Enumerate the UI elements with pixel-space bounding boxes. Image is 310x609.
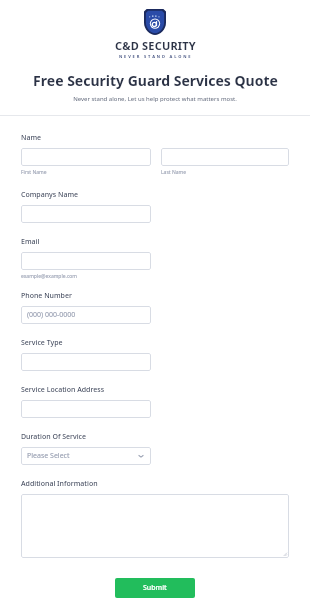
staticText: Email [21, 237, 40, 247]
button[interactable] [21, 494, 289, 558]
staticText: Duration Of Service [21, 432, 87, 442]
staticText: Never stand alone, Let us help protect w… [73, 95, 237, 103]
button[interactable]: (000) 000-0000 [21, 306, 151, 324]
staticText: C&D SECURITY [115, 38, 196, 53]
staticText: Name [21, 133, 42, 143]
staticText: N E V E R S T A N D A L O N E [119, 54, 191, 59]
staticText: (000) 000-0000 [27, 310, 76, 320]
button[interactable]: Please Select [21, 447, 151, 465]
staticText: Service Location Address [21, 385, 105, 395]
staticText: First Name [21, 169, 47, 176]
staticText: Phone Number [21, 291, 72, 301]
staticText: Free Security Guard Services Quote [33, 71, 278, 90]
button[interactable] [21, 148, 151, 166]
staticText: Additional Information [21, 479, 98, 489]
staticText: Submit [143, 583, 167, 593]
button[interactable]: Submit [115, 578, 195, 598]
button[interactable] [21, 353, 151, 371]
button[interactable] [21, 205, 151, 223]
button[interactable] [21, 252, 151, 270]
staticText: example@example.com [21, 273, 77, 280]
button[interactable] [161, 148, 289, 166]
staticText: Please Select [27, 451, 70, 461]
staticText: Last Name [161, 169, 187, 176]
staticText: Companys Name [21, 190, 79, 200]
button[interactable] [21, 400, 151, 418]
other: C&D Security logo [144, 9, 166, 35]
staticText: Service Type [21, 338, 63, 348]
